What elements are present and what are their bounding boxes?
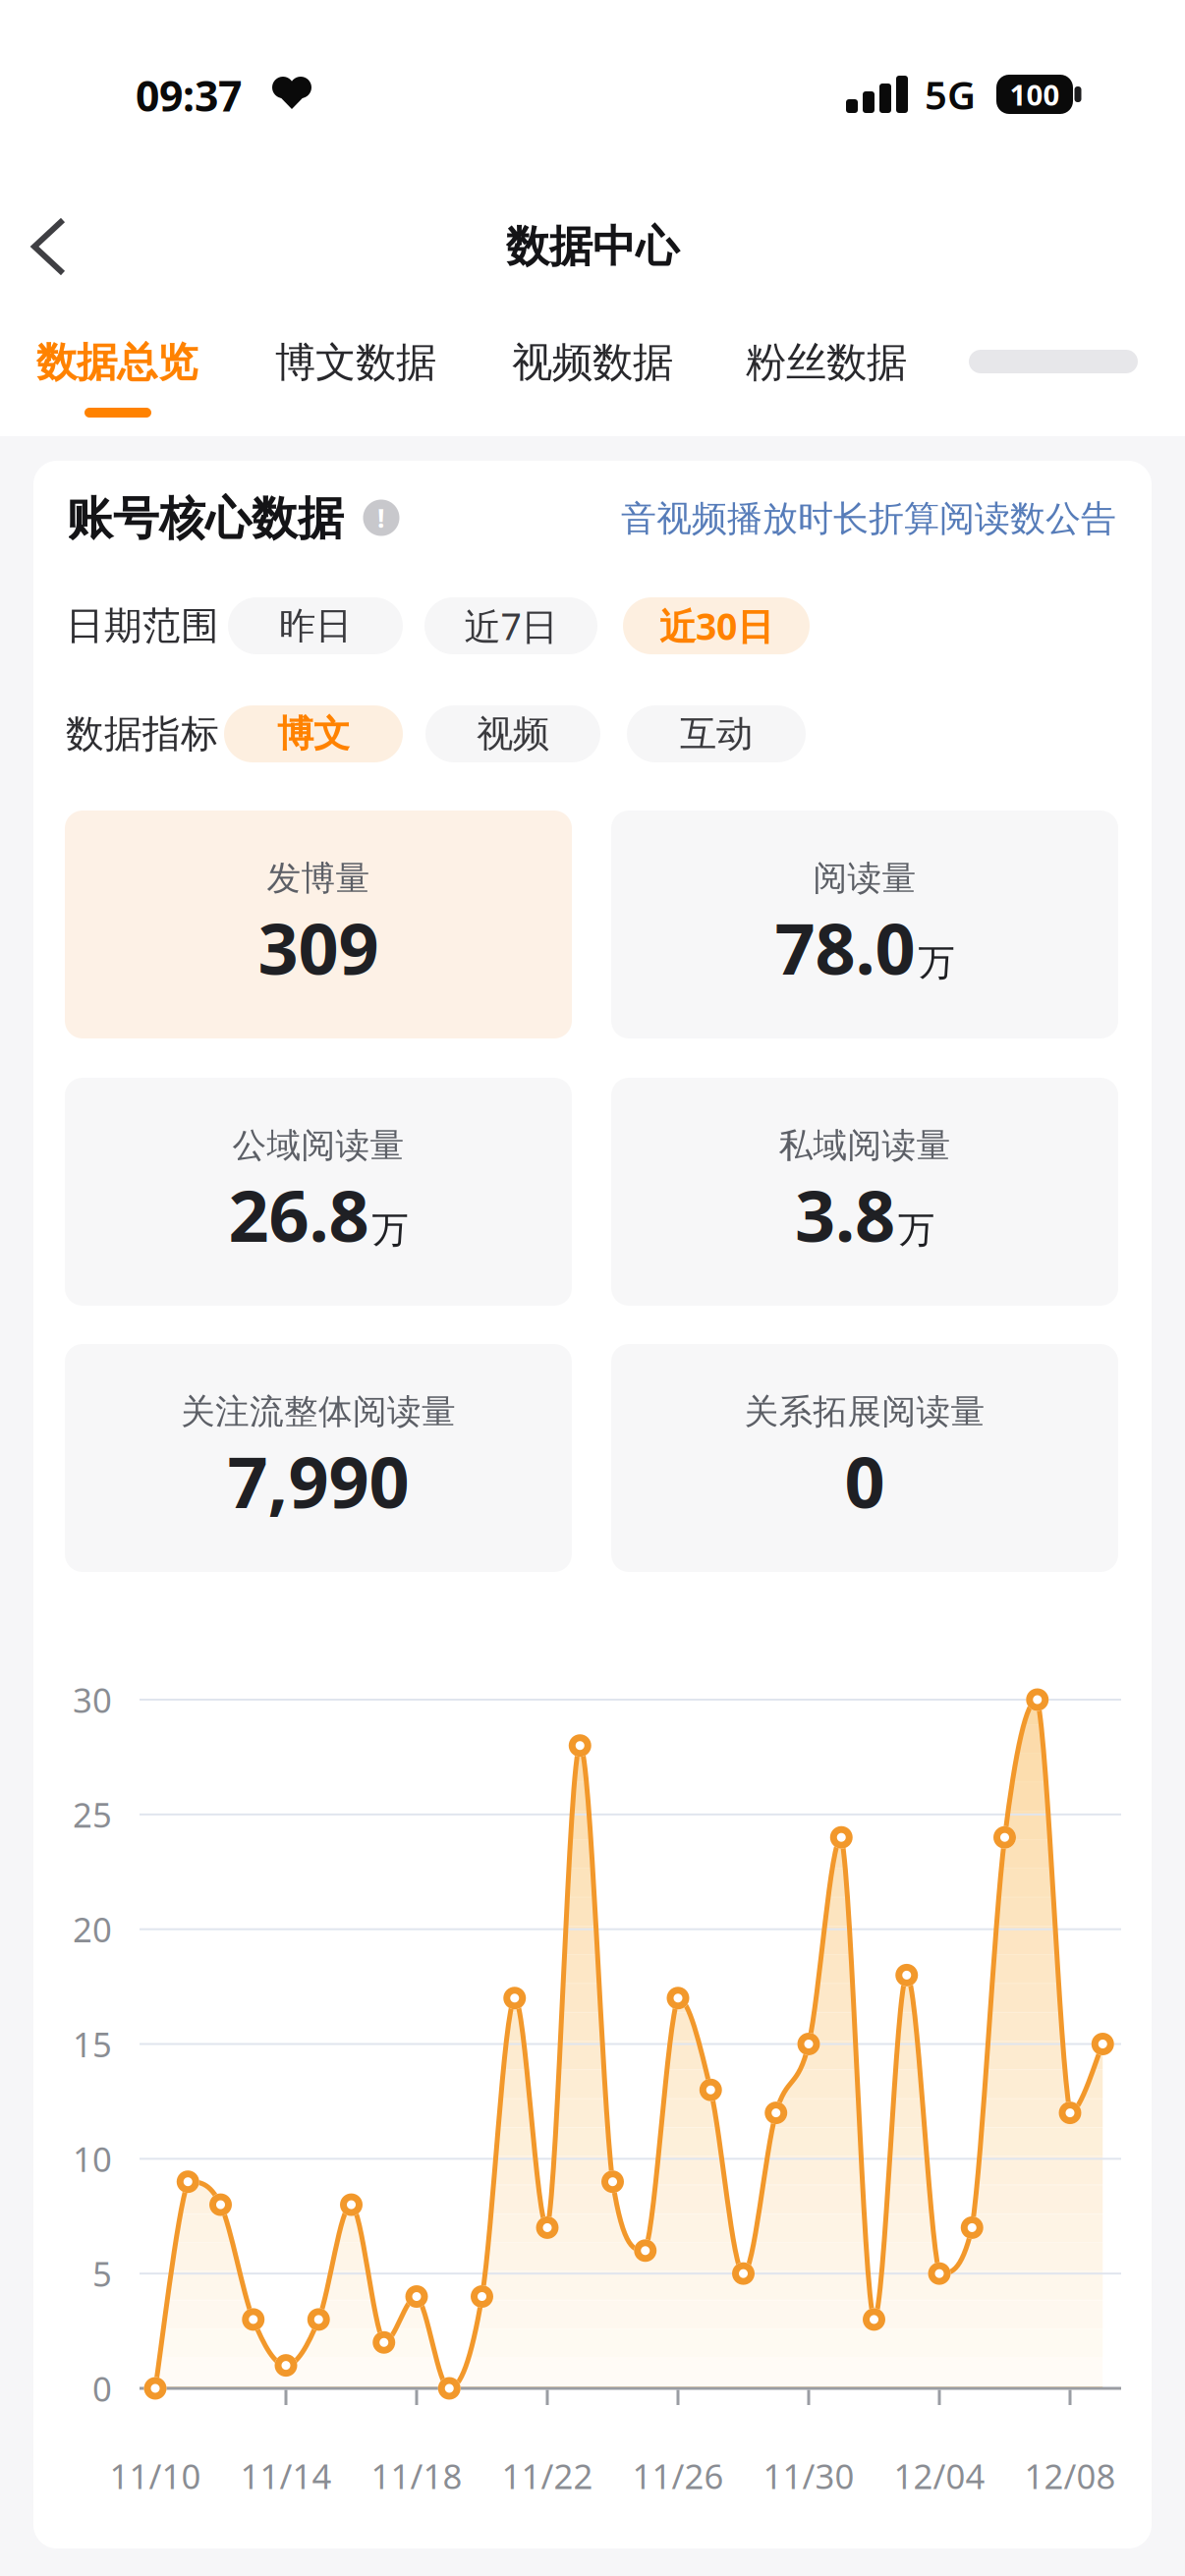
- staticText: 12/04: [894, 2453, 985, 2498]
- staticText: 关注流整体阅读量: [181, 1391, 456, 1433]
- staticText: 0: [845, 1434, 885, 1528]
- staticText: 博文: [277, 711, 350, 756]
- staticText: 近30日: [659, 601, 773, 650]
- staticText: 11/22: [502, 2453, 593, 2498]
- button[interactable]: 互动: [627, 705, 806, 762]
- button[interactable]: 博文: [224, 705, 403, 762]
- staticText: 账号核心数据: [67, 491, 344, 547]
- staticText: 视频: [477, 711, 549, 756]
- staticText: !: [377, 500, 385, 535]
- button[interactable]: 私域阅读量: [611, 1078, 1118, 1306]
- button[interactable]: 音视频播放时长折算阅读数公告: [621, 497, 1116, 540]
- staticText: 视频数据: [512, 338, 673, 387]
- staticText: 5G: [925, 68, 976, 120]
- button[interactable]: 发博量: [65, 811, 572, 1038]
- staticText: 10: [73, 2136, 112, 2181]
- button[interactable]: 关系拓展阅读量: [611, 1344, 1118, 1572]
- staticText: 3.8: [795, 1167, 895, 1261]
- staticText: 09:37: [136, 67, 242, 123]
- staticText: 30: [73, 1677, 112, 1722]
- staticText: 公域阅读量: [232, 1125, 404, 1166]
- staticText: 音视频播放时长折算阅读数公告: [621, 497, 1116, 540]
- button[interactable]: 视频数据: [512, 338, 673, 387]
- staticText: 近7日: [464, 601, 558, 650]
- staticText: 7,990: [227, 1434, 409, 1528]
- button[interactable]: 近30日: [623, 597, 810, 654]
- staticText: 互动: [680, 711, 753, 756]
- staticText: 万: [372, 1207, 408, 1253]
- staticText: 11/30: [763, 2453, 854, 2498]
- staticText: 万: [898, 1207, 934, 1253]
- staticText: 关系拓展阅读量: [744, 1391, 985, 1433]
- button[interactable]: 阅读量: [611, 811, 1118, 1038]
- staticText: 25: [73, 1792, 112, 1837]
- staticText: 昨日: [279, 603, 352, 648]
- staticText: 20: [73, 1907, 112, 1952]
- staticText: 5: [92, 2251, 112, 2296]
- button[interactable]: 公域阅读量: [65, 1078, 572, 1306]
- button[interactable]: 视频: [425, 705, 600, 762]
- staticText: 私域阅读量: [779, 1125, 951, 1166]
- staticText: 数据指标: [66, 711, 219, 757]
- staticText: 日期范围: [66, 603, 219, 649]
- button[interactable]: [20, 212, 88, 281]
- staticText: 26.8: [228, 1167, 369, 1261]
- staticText: 15: [73, 2021, 112, 2067]
- staticText: 11/10: [110, 2453, 201, 2498]
- button[interactable]: 数据总览: [36, 338, 197, 387]
- staticText: 0: [92, 2366, 112, 2411]
- staticText: 11/14: [240, 2453, 332, 2498]
- button[interactable]: !: [363, 500, 399, 536]
- staticText: 阅读量: [813, 857, 916, 899]
- staticText: 78.0: [775, 900, 915, 994]
- staticText: 100: [1010, 75, 1060, 113]
- staticText: 309: [258, 900, 379, 994]
- button[interactable]: 昨日: [228, 597, 403, 654]
- staticText: 数据中心: [506, 220, 679, 273]
- button[interactable]: 博文数据: [275, 338, 436, 387]
- staticText: 11/18: [371, 2453, 462, 2498]
- staticText: 粉丝数据: [746, 338, 907, 387]
- button[interactable]: 近7日: [424, 597, 597, 654]
- staticText: 11/26: [632, 2453, 724, 2498]
- staticText: 数据总览: [36, 338, 197, 387]
- staticText: 12/08: [1024, 2453, 1116, 2498]
- staticText: 万: [918, 940, 955, 985]
- staticText: 发博量: [267, 857, 370, 899]
- button[interactable]: 粉丝数据: [746, 338, 907, 387]
- button[interactable]: 关注流整体阅读量: [65, 1344, 572, 1572]
- staticText: 博文数据: [275, 338, 436, 387]
